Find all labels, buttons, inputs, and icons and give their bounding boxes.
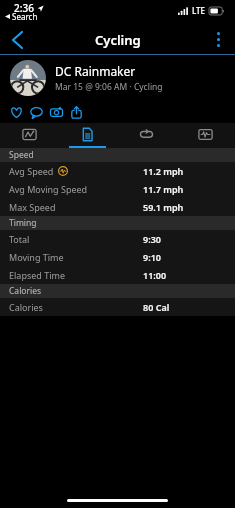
staticText: Search <box>12 11 38 22</box>
button[interactable]: More options <box>201 24 235 55</box>
staticText: 59.1 mph <box>143 201 184 213</box>
staticText: Speed <box>9 149 34 161</box>
button[interactable]: DC Rainmaker <box>0 55 235 101</box>
button[interactable]: Moving Time <box>0 248 235 266</box>
button[interactable]: Details <box>58 123 117 148</box>
staticText: Avg Moving Speed <box>9 183 88 195</box>
staticText: 9:30 <box>143 233 161 245</box>
staticText: DC Rainmaker <box>55 63 136 79</box>
staticText: Moving Time <box>9 251 64 263</box>
staticText: LTE <box>192 5 206 16</box>
button[interactable]: Laps <box>117 123 176 148</box>
button[interactable]: Map <box>0 123 58 148</box>
staticText: Calories <box>9 285 42 297</box>
button[interactable]: Elapsed Time <box>0 266 235 284</box>
staticText: 9:10 <box>143 251 161 263</box>
button[interactable]: Like <box>6 101 26 123</box>
staticText: 11.7 mph <box>143 183 184 195</box>
staticText: Timing <box>9 217 37 229</box>
button[interactable]: Comment <box>26 101 46 123</box>
button[interactable]: Total <box>0 230 235 248</box>
staticText: Avg Speed <box>9 165 54 177</box>
button[interactable]: Avg Speed <box>0 162 235 180</box>
staticText: 2:36 <box>14 1 34 15</box>
button[interactable]: Charts <box>176 123 235 148</box>
button[interactable]: Max Speed <box>0 198 235 216</box>
button[interactable]: Back <box>0 24 34 55</box>
button[interactable]: Calories <box>0 298 235 316</box>
staticText: Cycling <box>95 31 141 49</box>
staticText: Max Speed <box>9 201 56 213</box>
staticText: Calories <box>9 301 43 313</box>
staticText: Mar 15 @ 9:06 AM · Cycling <box>55 81 163 93</box>
staticText: Total <box>9 233 30 245</box>
staticText: 11.2 mph <box>143 165 184 177</box>
staticText: 11:00 <box>143 269 167 281</box>
staticText: 80 Cal <box>143 301 170 313</box>
button[interactable]: Avg Moving Speed <box>0 180 235 198</box>
staticText: Elapsed Time <box>9 269 65 281</box>
button[interactable]: Share <box>66 101 86 123</box>
button[interactable]: Photo <box>46 101 66 123</box>
